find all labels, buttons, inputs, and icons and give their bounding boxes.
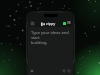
staticText: Type your ideas and start building. <box>31 30 71 45</box>
button[interactable]: Add attachment <box>30 69 34 73</box>
button[interactable]: zippy <box>41 21 56 26</box>
button[interactable]: Menu <box>30 21 35 26</box>
button[interactable]: Voice input <box>62 69 66 73</box>
button[interactable]: Send <box>67 69 71 73</box>
staticText: zippy <box>46 21 56 26</box>
staticText: 98 <box>67 21 71 25</box>
